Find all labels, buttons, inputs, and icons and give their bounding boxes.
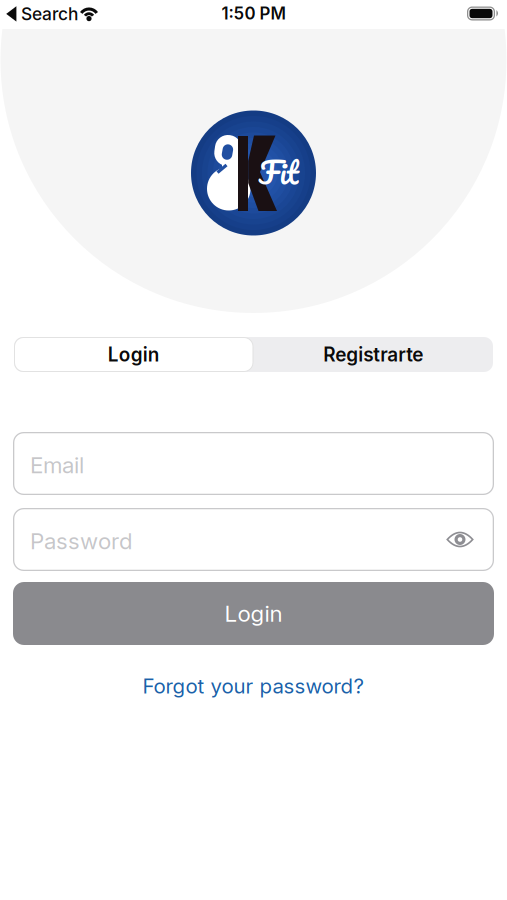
- button[interactable]: Back to Search: [0, 0, 106, 28]
- button[interactable]: Show password: [438, 519, 482, 559]
- staticText: Email: [30, 451, 84, 478]
- button[interactable]: Forgot your password?: [142, 674, 364, 698]
- textField[interactable]: Password: [13, 524, 494, 554]
- staticText: Login: [224, 600, 282, 627]
- textField[interactable]: Email: [13, 448, 494, 478]
- button[interactable]: Login: [14, 337, 253, 372]
- staticText: Forgot your password?: [142, 674, 364, 698]
- staticText: Registrarte: [323, 343, 423, 366]
- staticText: Fit: [258, 146, 298, 198]
- staticText: Password: [30, 527, 133, 554]
- staticText: Login: [108, 343, 160, 366]
- staticText: Email: [13, 448, 72, 478]
- staticText: Password: [13, 524, 117, 554]
- button[interactable]: Login: [13, 582, 494, 645]
- staticText: 1:50 PM: [221, 3, 285, 24]
- staticText: Search: [21, 3, 78, 24]
- button[interactable]: Registrarte: [253, 337, 493, 372]
